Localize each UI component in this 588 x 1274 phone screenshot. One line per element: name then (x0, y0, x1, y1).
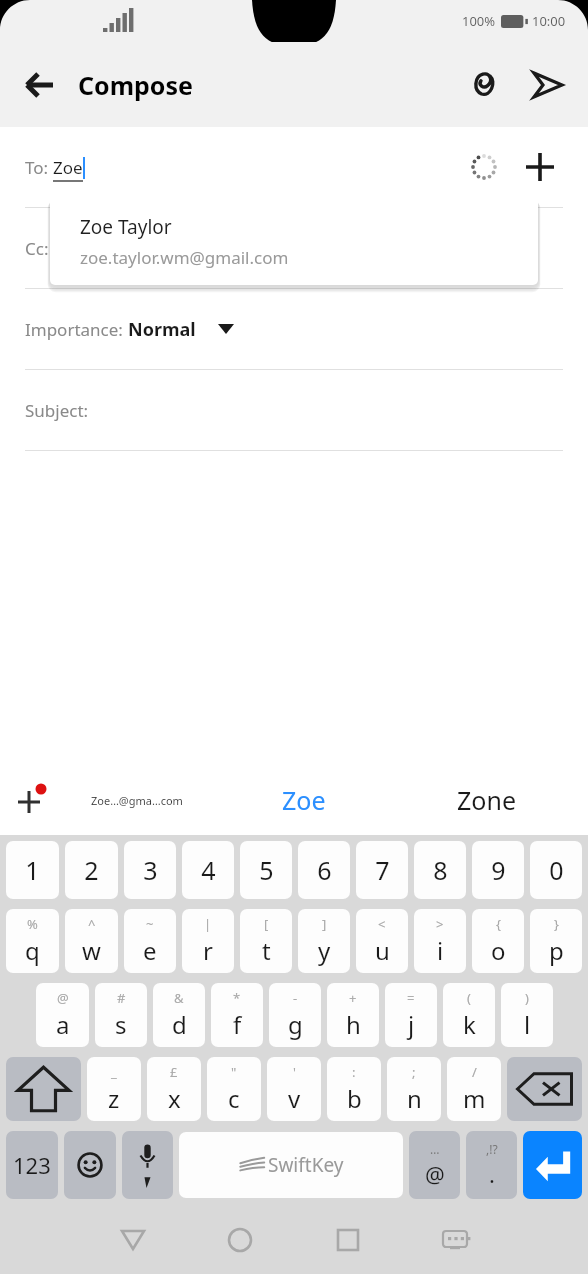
staticText: [ (264, 915, 269, 933)
button[interactable]: - (269, 983, 321, 1047)
staticText: | (204, 915, 212, 933)
button[interactable]: 5 (240, 841, 292, 899)
button[interactable]: " (207, 1057, 261, 1121)
button[interactable]: Home (217, 1217, 263, 1263)
staticText: # (117, 989, 126, 1007)
staticText: v (288, 1082, 301, 1115)
staticText: m (463, 1082, 486, 1115)
button[interactable]: > (414, 909, 466, 973)
button[interactable]: * (211, 983, 263, 1047)
staticText: l (524, 1008, 531, 1041)
button[interactable]: Enter (523, 1131, 582, 1199)
staticText: f (233, 1008, 242, 1041)
staticText: ; (412, 1063, 416, 1081)
button[interactable]: Voice input (122, 1131, 173, 1199)
button[interactable]: Space (179, 1132, 403, 1198)
staticText: @ (425, 1159, 445, 1189)
staticText: Normal (128, 317, 196, 342)
button[interactable]: Zone (395, 765, 578, 835)
button[interactable]: @ (36, 983, 89, 1047)
staticText: 9 (491, 853, 506, 887)
button[interactable]: [ (240, 909, 292, 973)
staticText: % (27, 915, 38, 933)
button[interactable]: Subject: (0, 370, 588, 450)
staticText: + (349, 989, 357, 1007)
staticText: b (347, 1082, 362, 1115)
button[interactable]: 7 (356, 841, 408, 899)
button[interactable]: Attach (456, 57, 512, 113)
button[interactable]: 123 (6, 1131, 58, 1199)
button[interactable]: 4 (182, 841, 234, 899)
button[interactable]: ) (501, 983, 553, 1047)
button[interactable]: # (95, 983, 147, 1047)
button[interactable]: _ (87, 1057, 141, 1121)
staticText: zoe.taylor.wm@gmail.com (80, 246, 289, 269)
button[interactable]: Recents (325, 1217, 371, 1263)
button[interactable]: £ (147, 1057, 201, 1121)
staticText: * (233, 989, 241, 1007)
button[interactable]: ~ (124, 909, 176, 973)
button[interactable]: Add recipient (517, 144, 563, 190)
staticText: 3 (143, 853, 158, 887)
button[interactable]: Zoe (212, 765, 395, 835)
staticText: Cc: (25, 237, 49, 260)
staticText: _ (111, 1063, 117, 1081)
staticText: o (491, 934, 506, 967)
button[interactable]: / (447, 1057, 501, 1121)
button[interactable]: ; (387, 1057, 441, 1121)
button[interactable]: ( (443, 983, 495, 1047)
button[interactable]: 9 (472, 841, 524, 899)
button[interactable]: Back (110, 1217, 156, 1263)
staticText: w (82, 934, 101, 967)
button[interactable]: Send (520, 57, 576, 113)
staticText: c (228, 1082, 240, 1115)
button[interactable]: Zoe…@gma…com (62, 765, 212, 835)
button[interactable]: ^ (65, 909, 118, 973)
button[interactable]: + (327, 983, 379, 1047)
button[interactable]: ] (298, 909, 350, 973)
button[interactable]: Backspace (507, 1057, 582, 1121)
staticText: j (408, 1008, 415, 1041)
staticText: q (25, 934, 40, 967)
staticText: 2 (84, 853, 99, 887)
button[interactable]: % (6, 909, 59, 973)
staticText: r (203, 934, 213, 967)
button[interactable]: More options (0, 765, 62, 835)
staticText: d (172, 1008, 187, 1041)
button[interactable]: Back (12, 57, 68, 113)
button[interactable]: Shift (6, 1057, 81, 1121)
button[interactable]: Emoji (64, 1131, 116, 1199)
button[interactable]: | (182, 909, 234, 973)
button[interactable]: 8 (414, 841, 466, 899)
button[interactable]: 1 (6, 841, 59, 899)
button[interactable]: = (385, 983, 437, 1047)
staticText: SwiftKey (268, 1152, 344, 1178)
button[interactable]: 2 (65, 841, 118, 899)
staticText: g (288, 1008, 303, 1041)
staticText: Zoe (282, 783, 326, 817)
staticText: . (489, 1159, 495, 1189)
button[interactable]: Cc: (0, 208, 588, 288)
button[interactable]: < (356, 909, 408, 973)
staticText: Compose (78, 68, 193, 102)
button[interactable]: ' (267, 1057, 321, 1121)
staticText: k (463, 1008, 476, 1041)
staticText: - (293, 989, 298, 1007)
button[interactable]: 0 (530, 841, 582, 899)
button[interactable]: : (327, 1057, 381, 1121)
button[interactable]: 3 (124, 841, 176, 899)
button[interactable]: } (530, 909, 582, 973)
button[interactable]: Importance: (0, 289, 588, 369)
button[interactable]: Hide keyboard (432, 1217, 478, 1263)
staticText: y (318, 934, 331, 967)
button[interactable]: 6 (298, 841, 350, 899)
button[interactable]: { (472, 909, 524, 973)
button[interactable]: ,!? (466, 1131, 517, 1199)
staticText: i (437, 934, 444, 967)
button[interactable]: Zoe Taylor (50, 197, 538, 285)
button[interactable]: & (153, 983, 205, 1047)
staticText: Zoe (53, 156, 83, 179)
staticText: 4 (201, 853, 216, 887)
button[interactable]: … (409, 1131, 460, 1199)
staticText: { (496, 915, 501, 933)
